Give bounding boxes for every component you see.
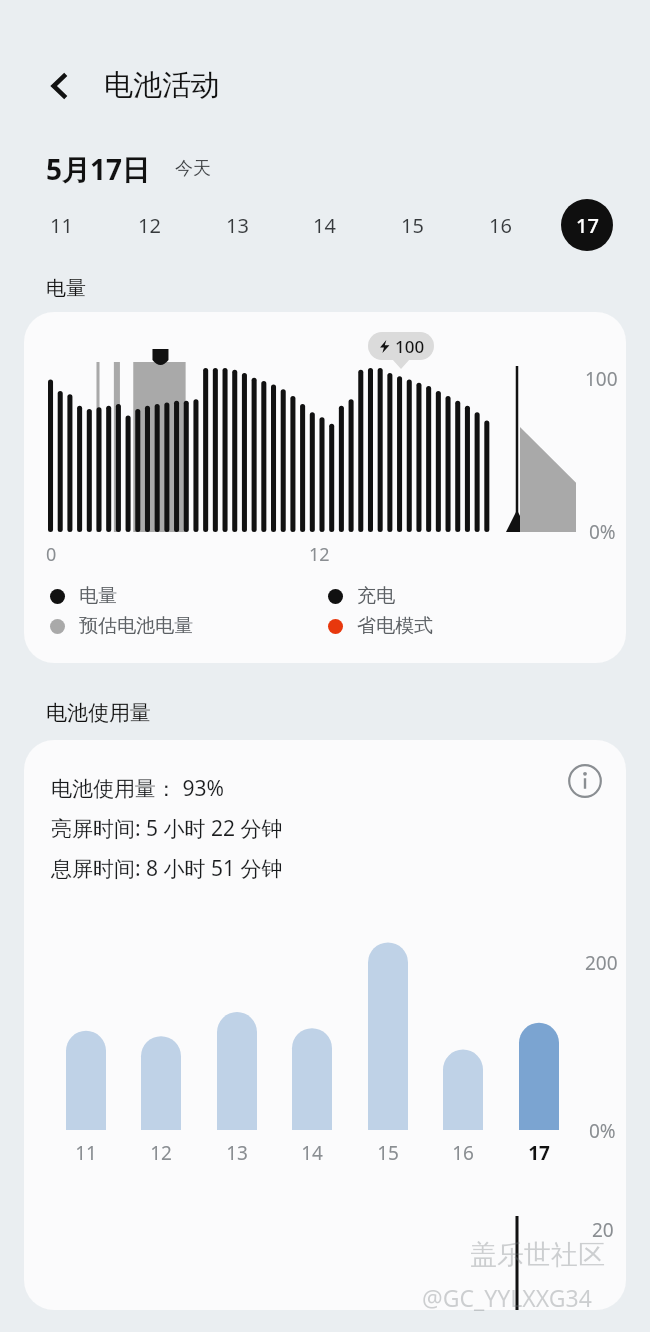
button[interactable]: 14: [298, 199, 350, 251]
staticText: 盖乐世社区: [470, 1238, 605, 1272]
button[interactable]: 13: [211, 199, 263, 251]
staticText: 14: [301, 1140, 323, 1166]
button[interactable]: 电池使用量： 93%: [24, 740, 626, 1310]
staticText: @GC_YYLXXG34: [422, 1282, 592, 1313]
staticText: 13: [226, 212, 249, 239]
staticText: 20: [592, 1217, 614, 1243]
button[interactable]: Information: [561, 757, 609, 805]
staticText: 0%: [589, 519, 616, 545]
button[interactable]: 预估电池电量: [50, 614, 193, 638]
button[interactable]: 11: [35, 199, 87, 251]
staticText: 12: [150, 1140, 172, 1166]
staticText: 0: [46, 542, 57, 567]
staticText: 17: [528, 1140, 550, 1166]
staticText: 17: [576, 212, 599, 239]
button[interactable]: 0: [24, 312, 626, 663]
button[interactable]: 16: [474, 199, 526, 251]
staticText: 电池活动: [104, 67, 220, 104]
button[interactable]: 电量: [50, 584, 117, 608]
button[interactable]: 省电模式: [328, 614, 433, 638]
staticText: 今天: [175, 157, 211, 180]
staticText: 100: [585, 366, 618, 392]
staticText: 电池使用量： 93%: [51, 774, 224, 803]
staticText: 11: [50, 212, 73, 239]
staticText: 100: [395, 335, 425, 358]
staticText: 15: [401, 212, 424, 239]
staticText: 14: [313, 212, 336, 239]
staticText: 200: [585, 950, 618, 976]
staticText: 0%: [589, 1118, 616, 1144]
staticText: 16: [489, 212, 512, 239]
staticText: 5月17日: [46, 150, 151, 188]
button[interactable]: 12: [123, 199, 175, 251]
button[interactable]: 17: [561, 199, 613, 251]
staticText: 省电模式: [357, 614, 433, 638]
staticText: 13: [226, 1140, 248, 1166]
staticText: 预估电池电量: [79, 614, 193, 638]
staticText: 15: [377, 1140, 399, 1166]
button[interactable]: 15: [386, 199, 438, 251]
staticText: 12: [309, 542, 330, 567]
staticText: 12: [138, 212, 161, 239]
staticText: 16: [452, 1140, 474, 1166]
button[interactable]: Back: [34, 60, 86, 112]
staticText: 电池使用量: [46, 700, 151, 726]
staticText: 电量: [46, 276, 86, 301]
staticText: 电量: [79, 584, 117, 608]
staticText: 息屏时间: 8 小时 51 分钟: [51, 854, 283, 883]
staticText: 11: [75, 1140, 97, 1166]
button[interactable]: 充电: [328, 584, 395, 608]
staticText: 充电: [357, 584, 395, 608]
staticText: 亮屏时间: 5 小时 22 分钟: [51, 814, 283, 843]
